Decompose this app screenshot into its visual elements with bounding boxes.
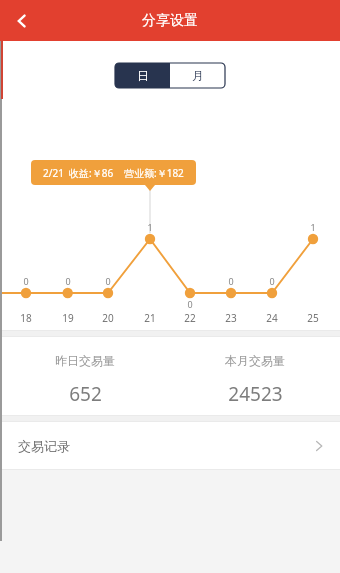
staticText: 19 xyxy=(62,311,74,325)
staticText: 0 xyxy=(269,275,275,287)
staticText: 月 xyxy=(192,68,204,83)
staticText: 25 xyxy=(307,311,319,325)
staticText: 0 xyxy=(23,275,29,287)
button[interactable]: 月 xyxy=(170,63,225,88)
staticText: 0 xyxy=(228,275,234,287)
staticText: 1 xyxy=(147,221,153,233)
button[interactable]: 交易记录 xyxy=(0,422,340,469)
staticText: 21 xyxy=(144,311,156,325)
staticText: 22 xyxy=(184,311,196,325)
staticText: 日 xyxy=(137,68,149,83)
staticText: 24523 xyxy=(228,381,283,407)
staticText: 0 xyxy=(105,275,111,287)
staticText: 0 xyxy=(187,298,193,310)
staticText: 交易记录 xyxy=(18,438,70,454)
button[interactable]: 日 xyxy=(115,63,170,88)
staticText: 24 xyxy=(266,311,278,325)
staticText: 18 xyxy=(20,311,32,325)
staticText: 2/21 收益:￥86 xyxy=(43,166,114,180)
button[interactable]: 昨日交易量 xyxy=(0,337,170,415)
staticText: 昨日交易量 xyxy=(55,353,115,368)
staticText: 营业额:￥182 xyxy=(124,166,184,180)
button[interactable]: 本月交易量 xyxy=(170,337,340,415)
button[interactable]: Back xyxy=(6,5,38,37)
staticText: 分享设置 xyxy=(142,12,198,30)
staticText: 本月交易量 xyxy=(225,353,285,368)
staticText: 1 xyxy=(310,221,316,233)
staticText: 23 xyxy=(225,311,237,325)
staticText: 652 xyxy=(69,381,102,407)
staticText: 20 xyxy=(102,311,114,325)
staticText: 0 xyxy=(65,275,71,287)
